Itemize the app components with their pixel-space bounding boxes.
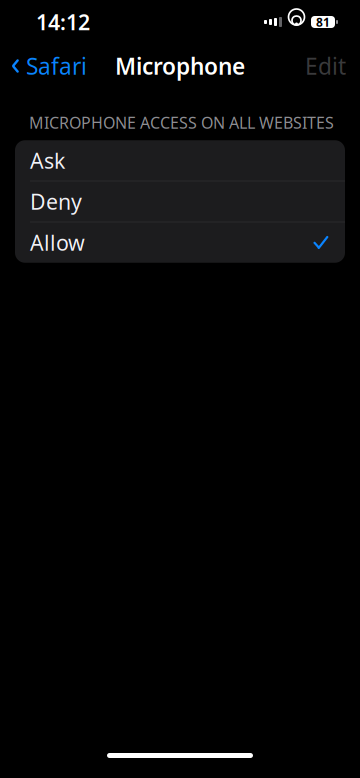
button[interactable]: Ask [15,140,345,181]
staticText: Ask [30,146,65,175]
button[interactable]: Edit [291,45,360,87]
button[interactable]: Deny [15,181,345,222]
staticText: Safari [26,51,87,81]
button[interactable]: Safari [0,45,97,87]
staticText: Allow [30,228,85,257]
staticText: MICROPHONE ACCESS ON ALL WEBSITES [29,112,334,133]
button[interactable]: Allow [15,222,345,263]
staticText: Microphone [115,51,245,81]
staticText: 14:12 [36,8,90,36]
staticText: Deny [30,187,82,216]
staticText: Edit [305,51,346,81]
staticText: 81 [316,14,330,30]
